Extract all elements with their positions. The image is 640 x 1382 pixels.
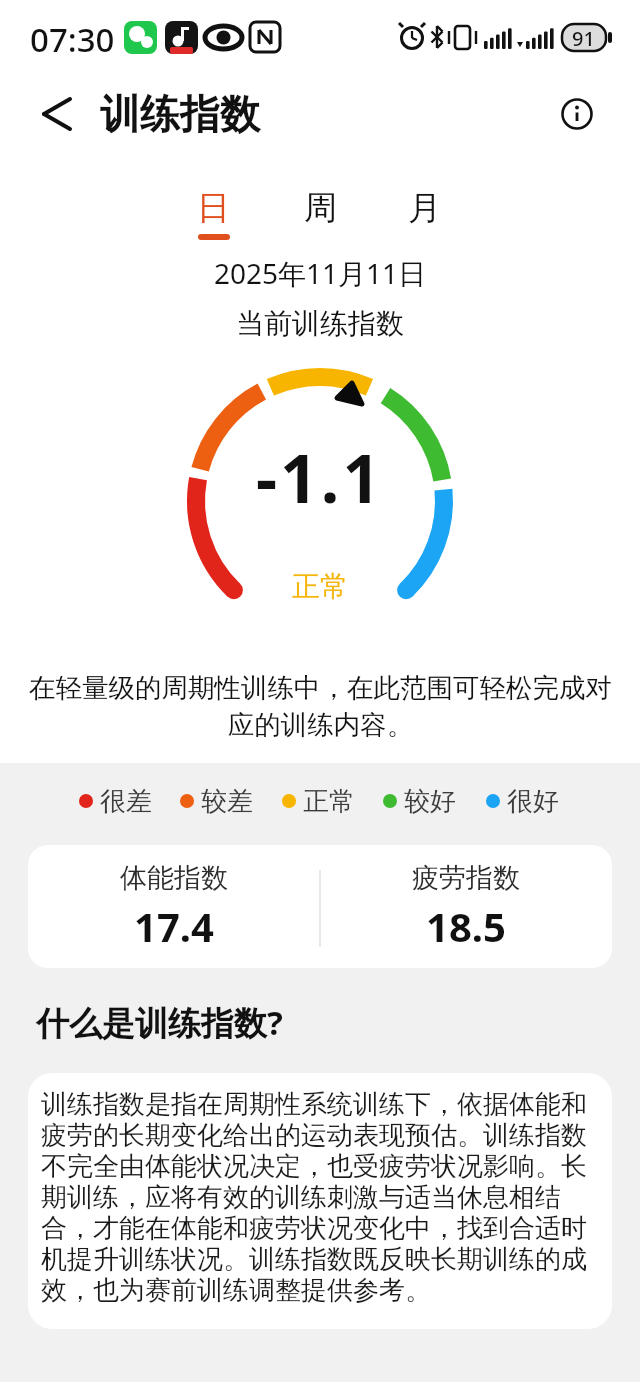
button[interactable] (557, 94, 597, 134)
staticText: 日 (197, 187, 230, 229)
staticText: 月 (408, 187, 441, 229)
staticText: 2025年11月11日 (214, 254, 427, 292)
staticText: 较差 (201, 785, 253, 818)
button[interactable]: 训练指数是指在周期性系统训练下，依据体能和疲劳的长期变化给出的运动表现预估。训练… (28, 1073, 612, 1329)
staticText: 正常 (292, 569, 348, 604)
button[interactable] (42, 90, 92, 140)
staticText: -1.1 (256, 432, 384, 522)
staticText: 疲劳指数 (412, 861, 520, 895)
staticText: 很差 (100, 785, 152, 818)
staticText: 训练指数 (100, 89, 260, 139)
staticText: 周 (304, 187, 337, 229)
staticText: 很好 (507, 785, 559, 818)
button[interactable]: 日 (178, 183, 248, 233)
staticText: 正常 (303, 785, 355, 818)
staticText: 当前训练指数 (236, 306, 404, 341)
button[interactable]: 周 (285, 183, 355, 233)
staticText: 体能指数 (120, 861, 228, 895)
button[interactable]: 月 (389, 183, 459, 233)
staticText: 较好 (404, 785, 456, 818)
staticText: 17.4 (134, 899, 214, 953)
staticText: 什么是训练指数? (36, 1000, 283, 1045)
staticText: 在轻量级的周期性训练中，在此范围可轻松完成对 应的训练内容。 (29, 671, 612, 741)
staticText: 07:30 (30, 17, 115, 57)
staticText: 91 (572, 25, 595, 52)
staticText: 训练指数是指在周期性系统训练下，依据体能和疲劳的长期变化给出的运动表现预估。训练… (41, 1088, 599, 1307)
staticText: 18.5 (426, 899, 506, 953)
button[interactable]: 体能指数 (28, 845, 612, 968)
